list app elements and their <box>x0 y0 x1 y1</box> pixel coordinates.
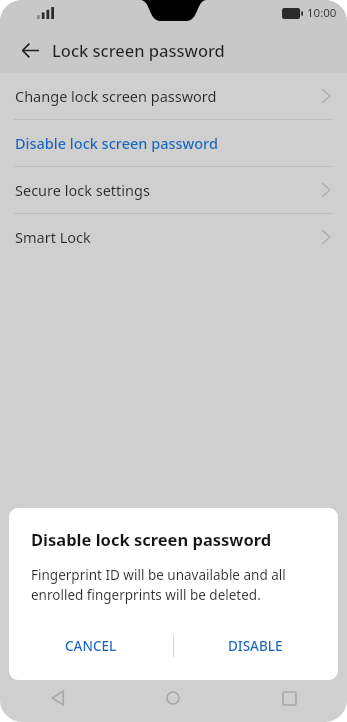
staticText: Smart Lock <box>15 227 91 247</box>
button[interactable]: Back <box>10 30 50 70</box>
button[interactable]: DISABLE <box>173 626 338 666</box>
staticText: 10:00 <box>307 5 337 21</box>
staticText: Lock screen password <box>52 39 225 61</box>
button[interactable]: CANCEL <box>9 626 173 666</box>
button[interactable]: Secure lock settings <box>0 167 347 213</box>
button[interactable]: Smart Lock <box>0 214 347 260</box>
staticText: DISABLE <box>228 637 283 655</box>
button[interactable]: Home <box>115 674 231 722</box>
staticText: Disable lock screen password <box>31 528 272 550</box>
button[interactable]: Change lock screen password <box>0 73 347 119</box>
button[interactable]: Disable lock screen password <box>0 120 347 166</box>
staticText: Fingerprint ID will be unavailable and a… <box>31 566 316 604</box>
staticText: Disable lock screen password <box>15 133 218 153</box>
button[interactable]: Recents <box>231 674 347 722</box>
staticText: Change lock screen password <box>15 86 217 106</box>
button[interactable]: Back <box>0 674 115 722</box>
staticText: Secure lock settings <box>15 180 150 200</box>
staticText: CANCEL <box>65 637 117 655</box>
